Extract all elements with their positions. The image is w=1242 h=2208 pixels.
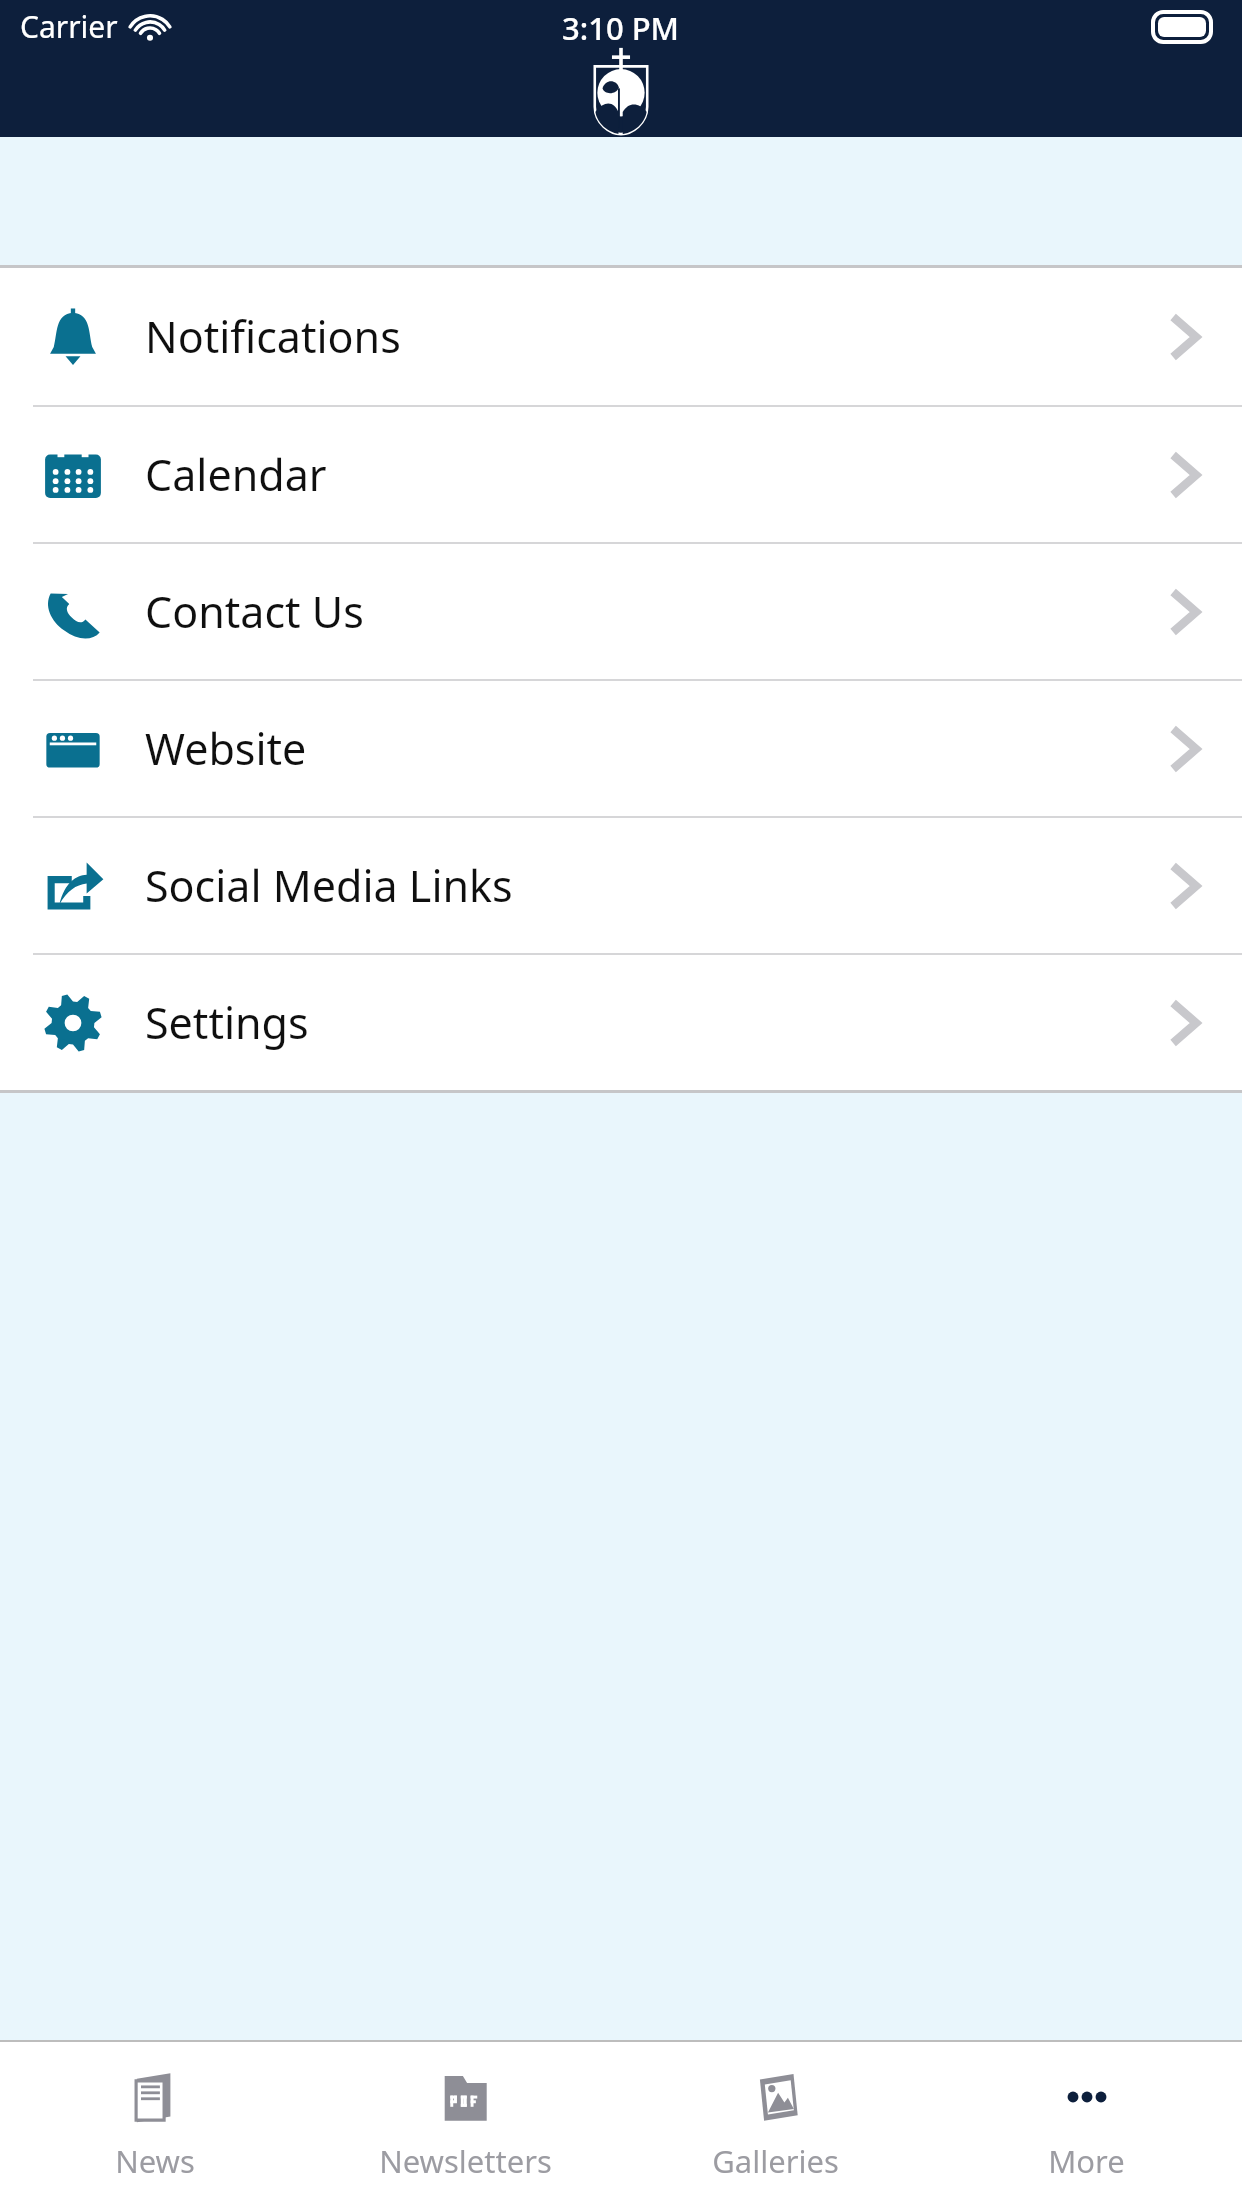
staticText: Contact Us xyxy=(145,582,364,641)
staticText: Website xyxy=(145,719,307,778)
staticText: Galleries xyxy=(712,2140,839,2182)
staticText: 3:10 PM xyxy=(562,7,680,49)
staticText: News xyxy=(115,2140,195,2182)
button[interactable]: Website xyxy=(0,681,1242,816)
button[interactable]: Galleries xyxy=(620,2042,931,2208)
button[interactable]: Newsletters xyxy=(310,2042,620,2208)
staticText: Social Media Links xyxy=(145,856,513,915)
staticText: Calendar xyxy=(145,445,327,504)
staticText: Settings xyxy=(145,993,309,1052)
button[interactable]: Social Media Links xyxy=(0,818,1242,953)
staticText: Newsletters xyxy=(379,2140,552,2182)
button[interactable]: Contact Us xyxy=(0,544,1242,679)
button[interactable]: Notifications xyxy=(0,268,1242,405)
button[interactable]: News xyxy=(0,2042,310,2208)
button[interactable]: More xyxy=(931,2042,1242,2208)
staticText: More xyxy=(1048,2140,1125,2182)
button[interactable]: Calendar xyxy=(0,407,1242,542)
staticText: Notifications xyxy=(145,307,401,366)
button[interactable]: Settings xyxy=(0,955,1242,1090)
staticText: Carrier xyxy=(20,6,118,47)
